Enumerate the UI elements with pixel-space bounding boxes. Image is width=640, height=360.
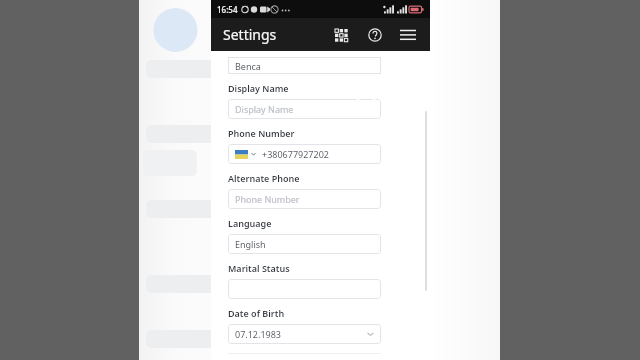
staticText: English: [235, 238, 266, 250]
staticText: Settings: [223, 25, 277, 44]
staticText: Phone Number: [228, 127, 295, 139]
staticText: Phone Number: [235, 193, 300, 205]
staticText: Display Name: [235, 103, 294, 115]
button[interactable]: Help: [362, 22, 388, 48]
staticText: Date of Birth: [228, 307, 285, 319]
button[interactable]: Scan code: [328, 22, 354, 48]
button[interactable]: English: [228, 234, 381, 254]
staticText: Marital Status: [228, 262, 290, 274]
staticText: 16:54: [217, 4, 238, 15]
button[interactable]: +380677927202: [228, 144, 381, 164]
button[interactable]: 07.12.1983: [228, 324, 381, 344]
button[interactable]: Display Name: [228, 99, 381, 119]
staticText: +380677927202: [262, 148, 329, 160]
button[interactable]: [228, 279, 381, 299]
staticText: Alternate Phone: [228, 172, 300, 184]
staticText: Display Name: [228, 82, 289, 94]
staticText: Benca: [235, 60, 261, 72]
staticText: 07.12.1983: [235, 328, 282, 340]
button[interactable]: Benca: [228, 57, 381, 74]
button[interactable]: Menu: [394, 21, 422, 49]
button[interactable]: Phone Number: [228, 189, 381, 209]
staticText: Language: [228, 217, 272, 229]
